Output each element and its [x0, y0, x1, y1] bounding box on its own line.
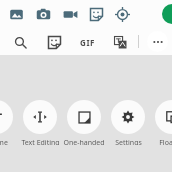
staticText: GIF	[80, 37, 96, 48]
button[interactable]: Translate	[110, 32, 130, 52]
button[interactable]: Floating	[151, 100, 172, 145]
button[interactable]: Text Editing	[19, 100, 61, 145]
button[interactable]: Stickers	[85, 3, 107, 25]
button[interactable]: Search	[10, 32, 30, 52]
button[interactable]: Theme	[0, 100, 17, 145]
button[interactable]: Video	[59, 3, 81, 25]
staticText: Floating	[159, 138, 172, 145]
button[interactable]: One-handed	[63, 100, 105, 145]
button[interactable]: Stickers	[44, 32, 64, 52]
staticText: Text Editing	[21, 138, 60, 145]
staticText: Settings	[115, 138, 142, 145]
button[interactable]: Send	[162, 4, 172, 24]
button[interactable]: More options	[147, 31, 168, 52]
button[interactable]: Camera	[32, 3, 54, 25]
button[interactable]: Gallery	[5, 3, 27, 25]
button[interactable]: GIF	[75, 34, 101, 50]
staticText: Theme	[0, 138, 8, 145]
staticText: One-handed	[63, 138, 105, 145]
button[interactable]: Location	[111, 3, 133, 25]
button[interactable]: Settings	[107, 100, 149, 145]
